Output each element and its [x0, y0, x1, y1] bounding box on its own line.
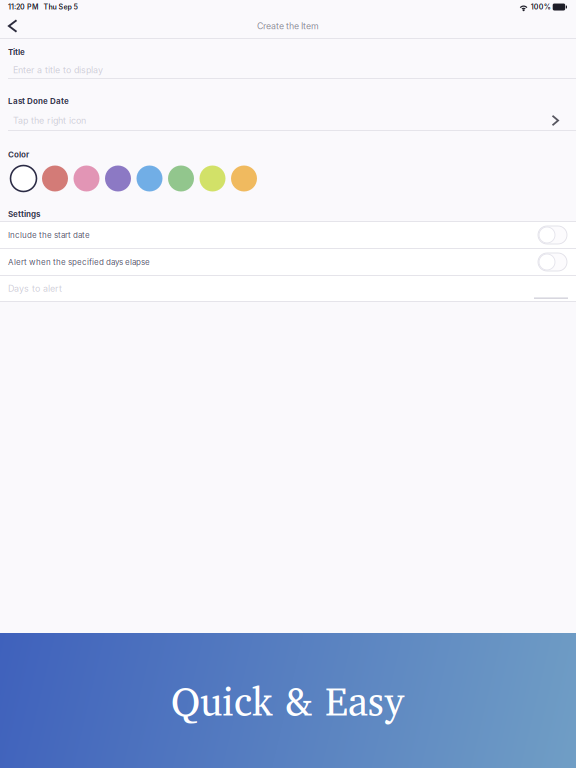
button[interactable]: Back — [0, 15, 28, 37]
button[interactable]: Colour 4 — [136, 165, 162, 191]
button[interactable]: Colour 6 — [199, 165, 225, 191]
staticText: 11:20 PM — [8, 3, 39, 11]
staticText: Title — [8, 47, 25, 57]
staticText: Last Done Date — [8, 96, 69, 106]
staticText: Enter a title to display — [13, 65, 103, 75]
staticText: Settings — [8, 209, 40, 219]
button[interactable]: Alert when the specified days elapse — [0, 249, 576, 275]
button[interactable]: Colour 3 — [105, 165, 131, 191]
staticText: Color — [8, 150, 29, 159]
button[interactable]: No colour — [10, 165, 36, 191]
staticText: Days to alert — [8, 283, 62, 294]
staticText: Thu Sep 5 — [43, 3, 77, 11]
staticText: Quick & Easy — [171, 668, 405, 733]
button[interactable]: Include the start date — [0, 222, 576, 248]
staticText: Tap the right icon — [13, 115, 86, 126]
staticText: Include the start date — [8, 230, 90, 240]
staticText: Create the Item — [257, 21, 319, 31]
staticText: 100% — [531, 3, 551, 11]
button[interactable]: Colour 5 — [168, 165, 194, 191]
button[interactable]: Colour 1 — [42, 165, 68, 191]
button[interactable]: Colour 2 — [73, 165, 99, 191]
button[interactable]: Colour 7 — [231, 165, 257, 191]
staticText: Alert when the specified days elapse — [8, 257, 150, 267]
button[interactable]: Choose a date — [545, 111, 566, 130]
